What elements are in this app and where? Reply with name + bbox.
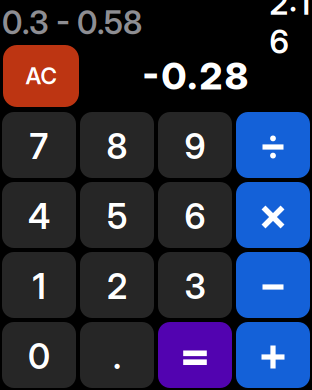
button[interactable]: Multiply — [236, 182, 310, 248]
button[interactable]: AC — [3, 45, 79, 107]
staticText: 2 — [107, 265, 127, 307]
staticText: -0.28 — [142, 53, 248, 99]
button[interactable]: 8 — [80, 112, 154, 178]
staticText: AC — [25, 62, 56, 90]
button[interactable]: 0 — [2, 322, 76, 388]
button[interactable]: 3 — [158, 252, 232, 318]
button[interactable]: 4 — [2, 182, 76, 248]
button[interactable]: 9 — [158, 112, 232, 178]
button[interactable]: Add — [236, 322, 310, 388]
staticText: 8 — [106, 125, 127, 167]
staticText: 0 — [28, 335, 50, 377]
staticText: 9 — [184, 125, 205, 167]
button[interactable]: Equals — [158, 322, 232, 388]
button[interactable]: 6 — [158, 182, 232, 248]
button[interactable]: . — [80, 322, 154, 388]
staticText: . — [113, 335, 121, 377]
staticText: 5 — [107, 195, 127, 237]
staticText: 6 — [184, 195, 205, 237]
staticText: 7 — [29, 125, 48, 167]
button[interactable]: Subtract — [236, 252, 310, 318]
button[interactable]: Divide — [236, 112, 310, 178]
button[interactable]: 2 — [80, 252, 154, 318]
button[interactable]: 7 — [2, 112, 76, 178]
staticText: 1 — [32, 265, 45, 307]
staticText: 0.3 - 0.58 — [2, 3, 142, 42]
button[interactable]: 5 — [80, 182, 154, 248]
staticText: 3 — [184, 265, 205, 307]
button[interactable]: 1 — [2, 252, 76, 318]
staticText: 4 — [28, 195, 50, 237]
staticText: 2:16 — [269, 0, 310, 61]
